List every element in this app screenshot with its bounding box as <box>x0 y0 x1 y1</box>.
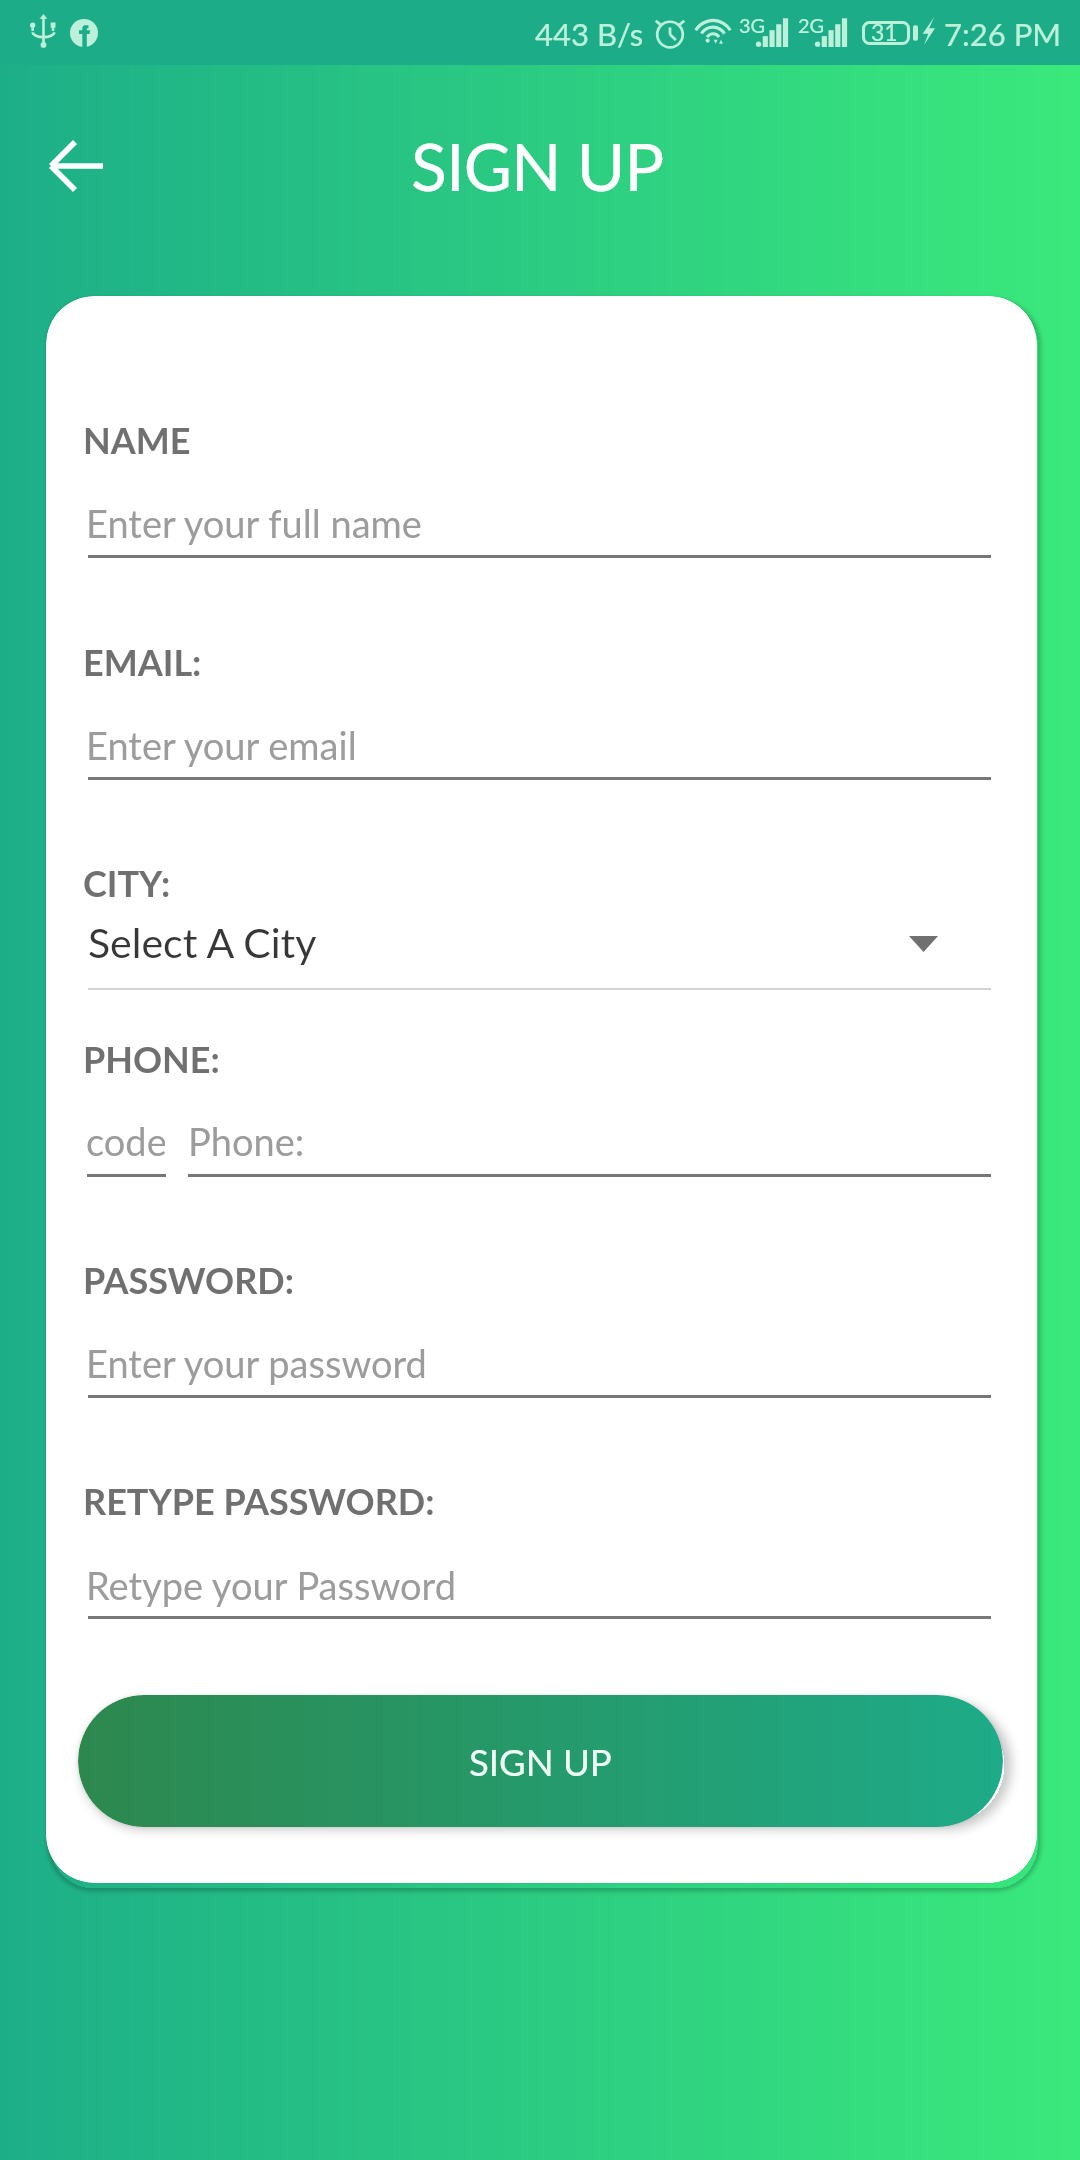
staticText: Enter your password <box>86 1340 686 1386</box>
staticText: Enter your full name <box>86 500 686 546</box>
staticText: Retype your Password <box>86 1562 686 1608</box>
staticText: Phone: <box>188 1118 788 1164</box>
staticText: RETYPE PASSWORD: <box>83 1479 435 1522</box>
button[interactable]: Retype your Password <box>88 1536 991 1619</box>
staticText: 443 B/s <box>535 15 644 52</box>
staticText: CITY: <box>83 861 171 904</box>
staticText: PHONE: <box>83 1037 220 1080</box>
staticText: SIGN UP <box>411 126 664 205</box>
button[interactable]: Phone: <box>188 1092 991 1177</box>
staticText: 3G <box>739 13 766 37</box>
staticText: EMAIL: <box>83 640 202 683</box>
staticText: SIGN UP <box>469 1740 612 1784</box>
button[interactable]: SIGN UP <box>78 1695 1003 1827</box>
button[interactable]: Enter your password <box>88 1314 991 1398</box>
staticText: 7:26 PM <box>944 15 1062 52</box>
staticText: 2G <box>798 13 825 37</box>
staticText: Select A City <box>88 918 688 967</box>
button[interactable]: Enter your full name <box>88 474 991 558</box>
button[interactable]: Select A City <box>88 893 991 990</box>
staticText: code <box>86 1118 165 1164</box>
staticText: 31 <box>871 18 898 42</box>
button[interactable]: Back <box>18 113 124 219</box>
staticText: PASSWORD: <box>83 1258 294 1301</box>
button[interactable]: code <box>87 1092 166 1177</box>
staticText: NAME <box>83 418 191 461</box>
staticText: Enter your email <box>86 722 686 768</box>
button[interactable]: Enter your email <box>88 696 991 780</box>
